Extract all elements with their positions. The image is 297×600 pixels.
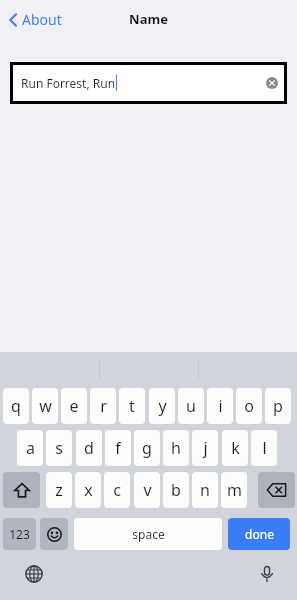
button[interactable]: Change keyboard language <box>22 562 46 586</box>
button[interactable]: b <box>163 472 189 508</box>
button[interactable]: done <box>228 518 290 550</box>
staticText: r <box>100 395 107 417</box>
staticText: About <box>22 10 62 29</box>
button[interactable]: l <box>251 430 277 466</box>
button[interactable]: e <box>61 388 87 424</box>
button[interactable]: Backspace <box>258 472 295 508</box>
staticText: z <box>55 479 63 501</box>
button[interactable]: k <box>222 430 248 466</box>
button[interactable]: Dictation <box>255 562 279 586</box>
staticText: Name <box>0 10 297 28</box>
staticText: u <box>186 395 196 417</box>
button[interactable]: i <box>207 388 233 424</box>
button[interactable]: Shift <box>3 472 40 508</box>
staticText: n <box>200 479 210 501</box>
button[interactable]: About, back <box>6 8 62 30</box>
staticText: w <box>39 395 52 417</box>
button[interactable]: Run Forrest, Run <box>13 65 284 101</box>
button[interactable]: 123 <box>3 518 36 550</box>
staticText: j <box>203 437 208 459</box>
button[interactable]: c <box>104 472 130 508</box>
button[interactable]: r <box>90 388 116 424</box>
staticText: done <box>245 526 274 542</box>
staticText: 123 <box>9 526 30 542</box>
button[interactable]: o <box>236 388 262 424</box>
button[interactable]: Clear text <box>266 77 278 89</box>
button[interactable]: Emoji <box>40 518 68 550</box>
staticText: b <box>171 479 181 501</box>
staticText: t <box>129 395 135 417</box>
button[interactable]: u <box>178 388 204 424</box>
button[interactable]: p <box>265 388 291 424</box>
button[interactable]: z <box>46 472 72 508</box>
button[interactable]: t <box>119 388 145 424</box>
button[interactable]: j <box>192 430 218 466</box>
staticText: y <box>158 395 167 417</box>
staticText: g <box>142 437 152 459</box>
staticText: q <box>11 395 21 417</box>
button[interactable]: v <box>134 472 160 508</box>
staticText: f <box>115 437 121 459</box>
staticText: x <box>84 479 93 501</box>
staticText: a <box>26 437 35 459</box>
button[interactable]: n <box>192 472 218 508</box>
staticText: p <box>273 395 283 417</box>
button[interactable]: d <box>76 430 102 466</box>
staticText: space <box>132 526 165 542</box>
button[interactable]: x <box>75 472 101 508</box>
staticText: m <box>227 479 242 501</box>
staticText: h <box>171 437 181 459</box>
button[interactable]: w <box>32 388 58 424</box>
staticText: o <box>244 395 254 417</box>
staticText: e <box>69 395 79 417</box>
staticText: c <box>113 479 121 501</box>
staticText: Run Forrest, Run <box>21 75 116 91</box>
button[interactable]: g <box>134 430 160 466</box>
button[interactable]: m <box>221 472 247 508</box>
staticText: l <box>262 437 267 459</box>
button[interactable]: y <box>149 388 175 424</box>
button[interactable]: space <box>74 518 222 550</box>
button[interactable]: h <box>163 430 189 466</box>
staticText: s <box>55 437 63 459</box>
button[interactable]: a <box>17 430 43 466</box>
staticText: i <box>218 395 223 417</box>
staticText: v <box>143 479 152 501</box>
button[interactable]: q <box>3 388 29 424</box>
button[interactable]: f <box>105 430 131 466</box>
staticText: d <box>84 437 94 459</box>
button[interactable]: s <box>46 430 72 466</box>
staticText: k <box>231 437 240 459</box>
